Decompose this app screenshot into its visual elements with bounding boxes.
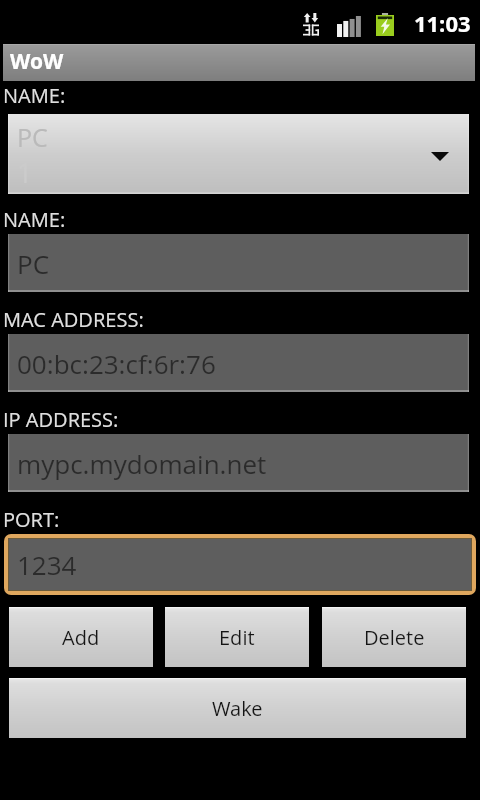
button[interactable]: Edit <box>165 607 309 667</box>
staticText: NAME: <box>3 82 66 109</box>
staticText: 00:bc:23:cf:6r:76 <box>17 346 216 381</box>
staticText: 1 <box>17 154 33 191</box>
button[interactable]: Wake <box>9 678 466 738</box>
button[interactable]: PC <box>8 234 469 292</box>
staticText: Wake <box>212 695 263 722</box>
staticText: PC <box>17 120 48 154</box>
button[interactable]: 1234 <box>9 539 471 590</box>
staticText: mypc.mydomain.net <box>17 446 267 481</box>
staticText: NAME: <box>3 206 66 233</box>
staticText: Add <box>62 624 100 651</box>
staticText: MAC ADDRESS: <box>3 306 144 333</box>
staticText: 1234 <box>17 547 77 582</box>
staticText: Edit <box>219 624 255 651</box>
staticText: PC <box>17 246 50 281</box>
button[interactable]: Add <box>9 607 153 667</box>
staticText: Delete <box>364 624 425 651</box>
staticText: PORT: <box>3 506 60 533</box>
button[interactable]: 00:bc:23:cf:6r:76 <box>8 334 469 392</box>
button[interactable]: mypc.mydomain.net <box>8 434 469 492</box>
button[interactable]: Delete <box>322 607 466 667</box>
staticText: WoW <box>10 47 64 76</box>
staticText: 11:03 <box>414 8 471 38</box>
staticText: IP ADDRESS: <box>3 406 119 433</box>
button[interactable]: PC <box>8 114 469 194</box>
